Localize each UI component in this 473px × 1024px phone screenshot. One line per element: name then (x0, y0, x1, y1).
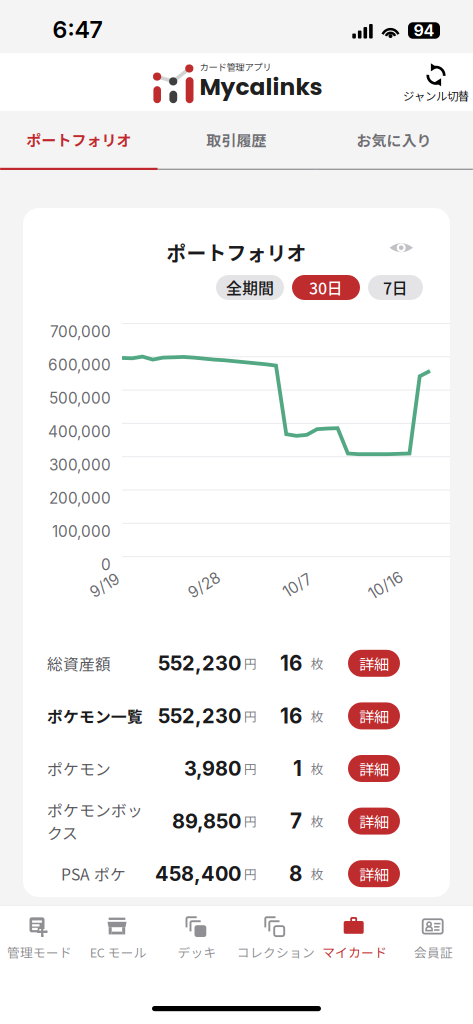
staticText: 円 (244, 864, 257, 883)
button[interactable]: ジャンル切替 (399, 59, 473, 107)
staticText: 8 (289, 861, 302, 886)
button[interactable]: 詳細 (348, 860, 400, 887)
button[interactable]: 詳細 (348, 808, 400, 835)
staticText: 400,000 (48, 422, 111, 441)
staticText: 9/19 (89, 576, 121, 595)
button[interactable]: 詳細 (348, 650, 400, 677)
button[interactable]: 金額を隠す (383, 235, 420, 261)
staticText: PSA ポケ (61, 862, 126, 885)
staticText: 600,000 (48, 356, 111, 374)
button[interactable]: 7日 (368, 275, 423, 300)
staticText: 全期間 (226, 276, 274, 299)
staticText: 30日 (309, 276, 343, 299)
staticText: 10/7 (282, 576, 313, 595)
staticText: 詳細 (359, 652, 389, 674)
staticText: コレクション (237, 943, 315, 961)
button[interactable]: EC モール (79, 905, 158, 971)
staticText: 7日 (383, 276, 408, 299)
staticText: 0 (101, 555, 111, 574)
staticText: 16 (280, 651, 302, 676)
staticText: 円 (244, 654, 257, 672)
button[interactable]: 30日 (292, 275, 360, 300)
staticText: ポケモン一覧 (47, 704, 143, 727)
staticText: 200,000 (49, 489, 111, 507)
staticText: ポケモンボックス (47, 798, 143, 844)
staticText: 詳細 (359, 810, 389, 832)
staticText: 94 (413, 21, 434, 40)
button[interactable]: 詳細 (348, 702, 400, 729)
staticText: 9/28 (187, 576, 221, 595)
staticText: 円 (244, 707, 257, 725)
staticText: 詳細 (359, 705, 389, 727)
staticText: 89,850 (172, 809, 241, 833)
staticText: 700,000 (50, 322, 111, 341)
staticText: EC モール (90, 943, 147, 961)
staticText: ポートフォリオ (166, 238, 306, 266)
button[interactable]: 管理モード (0, 905, 79, 971)
staticText: 552,230 (158, 704, 241, 728)
staticText: 300,000 (49, 456, 111, 474)
staticText: 7 (290, 809, 302, 834)
staticText: お気に入り (357, 129, 432, 151)
staticText: 詳細 (359, 757, 389, 780)
staticText: 458,400 (155, 862, 241, 886)
staticText: 会員証 (414, 943, 453, 961)
staticText: 16 (280, 703, 302, 728)
button[interactable]: ポートフォリオ (0, 111, 158, 170)
staticText: 3,980 (184, 756, 241, 781)
staticText: 6:47 (52, 15, 102, 44)
button[interactable]: マイカード (315, 905, 394, 971)
staticText: 枚 (310, 759, 323, 778)
button[interactable]: デッキ (158, 905, 236, 971)
staticText: 円 (244, 759, 257, 778)
staticText: カード管理アプリ (199, 60, 271, 73)
staticText: 10/16 (367, 576, 405, 595)
staticText: 枚 (310, 707, 323, 725)
staticText: 枚 (310, 654, 323, 672)
staticText: 円 (244, 812, 257, 830)
staticText: 総資産額 (47, 652, 111, 675)
staticText: 552,230 (158, 651, 241, 675)
staticText: デッキ (178, 943, 217, 961)
staticText: ポートフォリオ (26, 129, 131, 150)
button[interactable]: 取引履歴 (158, 111, 315, 170)
staticText: 枚 (310, 812, 323, 830)
staticText: 取引履歴 (206, 129, 266, 151)
button[interactable]: 全期間 (216, 275, 284, 300)
button[interactable]: 詳細 (348, 755, 400, 782)
staticText: マイカード (322, 943, 387, 961)
staticText: ポケモン (47, 757, 111, 780)
staticText: Mycalinks (199, 70, 322, 103)
button[interactable]: コレクション (236, 905, 315, 971)
staticText: 500,000 (49, 389, 111, 408)
staticText: 1 (293, 756, 302, 781)
staticText: 枚 (310, 864, 323, 883)
staticText: ジャンル切替 (403, 87, 469, 104)
button[interactable]: お気に入り (315, 111, 473, 170)
staticText: 100,000 (52, 522, 111, 541)
staticText: 管理モード (7, 943, 72, 961)
staticText: 詳細 (359, 863, 389, 885)
button[interactable]: 会員証 (394, 905, 473, 971)
